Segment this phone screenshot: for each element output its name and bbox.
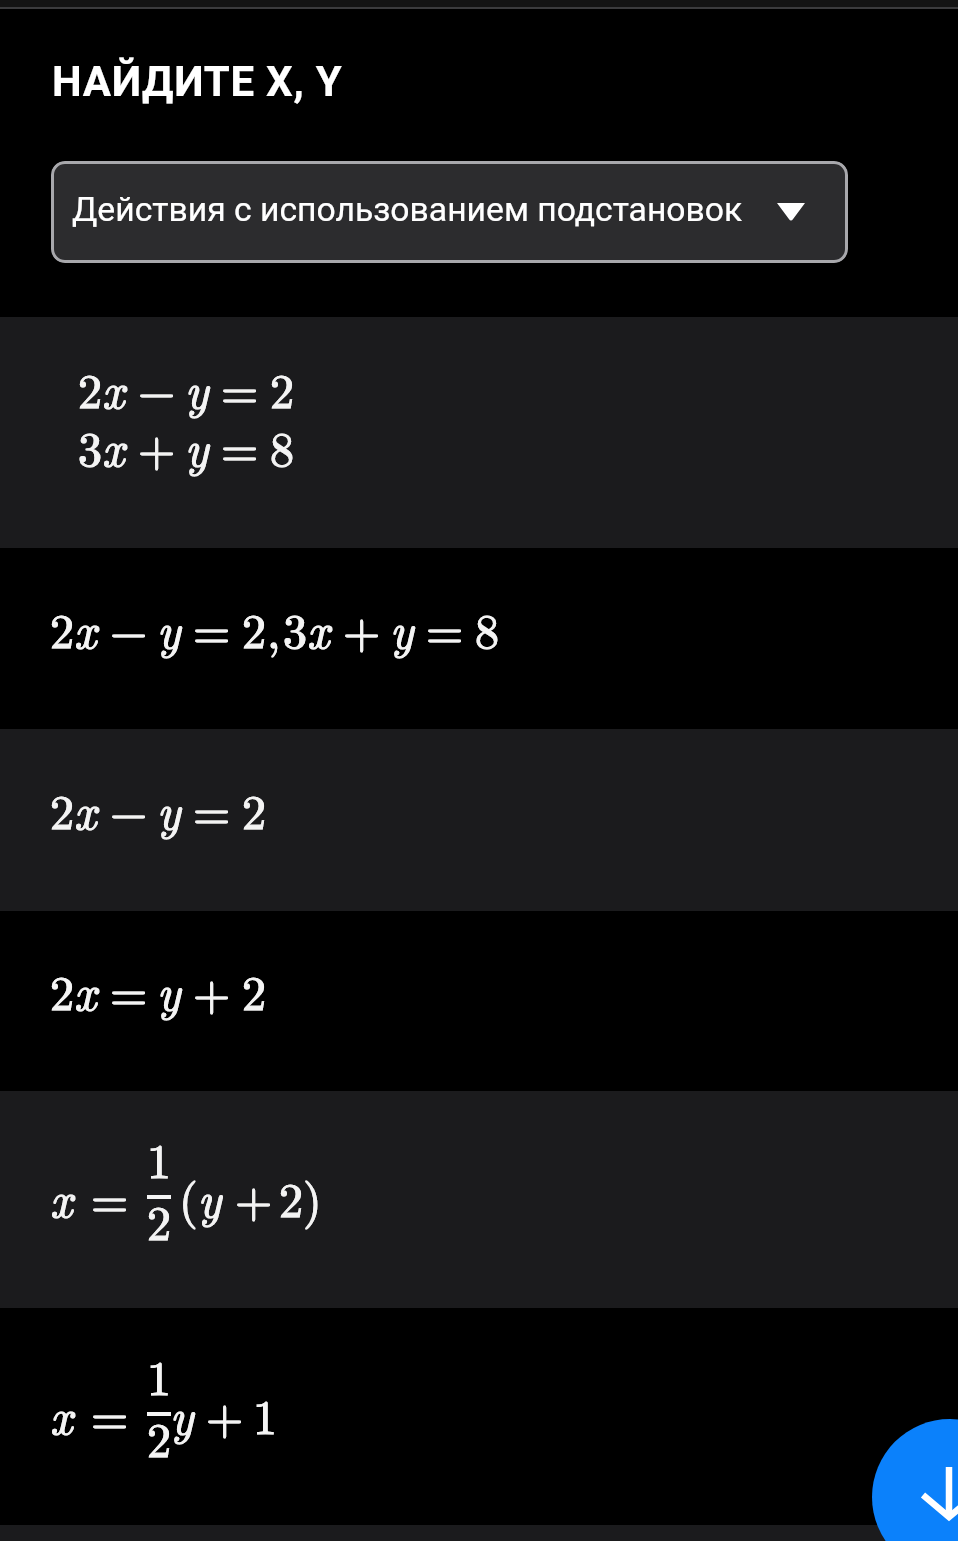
staticText: =: [221, 354, 259, 422]
staticText: 3x: [283, 594, 330, 662]
staticText: 1: [253, 1380, 278, 1448]
staticText: +: [206, 1380, 244, 1448]
staticText: y: [157, 956, 181, 1024]
staticText: x: [50, 1163, 73, 1231]
staticText: 8: [270, 412, 295, 480]
staticText: y: [185, 354, 209, 422]
staticText: 1: [147, 1124, 172, 1192]
staticText: =: [91, 1380, 129, 1448]
staticText: y: [157, 594, 181, 662]
staticText: −: [110, 775, 148, 843]
staticText: 2x: [78, 354, 125, 422]
staticText: y: [157, 956, 181, 1024]
staticText: +: [138, 412, 176, 480]
staticText: 2x: [50, 594, 97, 662]
staticText: 2: [242, 956, 267, 1024]
button[interactable]: x: [0, 1091, 958, 1308]
staticText: 2x: [50, 775, 97, 843]
staticText: =: [221, 354, 259, 422]
staticText: ,: [267, 594, 281, 662]
staticText: 2: [147, 1186, 172, 1254]
staticText: 2: [242, 956, 267, 1024]
staticText: =: [426, 594, 464, 662]
button[interactable]: 2x: [0, 729, 958, 911]
staticText: (y: [179, 1163, 222, 1231]
button[interactable]: x: [0, 1308, 958, 1525]
staticText: y: [185, 354, 209, 422]
staticText: y: [170, 1380, 194, 1448]
staticText: =: [221, 412, 259, 480]
staticText: y: [157, 594, 181, 662]
staticText: 1: [253, 1380, 278, 1448]
staticText: 2: [270, 354, 295, 422]
staticText: Действия с использованием подстановок: [72, 190, 743, 229]
staticText: 2): [279, 1163, 322, 1231]
staticText: y: [170, 1380, 194, 1448]
staticText: y: [185, 412, 209, 480]
staticText: =: [110, 956, 148, 1024]
staticText: x: [50, 1163, 73, 1231]
staticText: y: [390, 594, 414, 662]
staticText: −: [110, 594, 148, 662]
staticText: =: [91, 1163, 129, 1231]
staticText: 8: [475, 594, 500, 662]
staticText: =: [193, 775, 231, 843]
staticText: +: [235, 1163, 273, 1231]
staticText: =: [91, 1163, 129, 1231]
staticText: +: [343, 594, 381, 662]
staticText: =: [110, 956, 148, 1024]
button[interactable]: Scroll to bottom: [872, 1419, 958, 1541]
staticText: x: [50, 1380, 73, 1448]
staticText: 2: [242, 775, 267, 843]
staticText: 2: [147, 1403, 172, 1471]
staticText: 2: [242, 594, 267, 662]
staticText: 2x: [50, 956, 97, 1024]
staticText: 3x: [78, 412, 125, 480]
staticText: 8: [475, 594, 500, 662]
staticText: 2: [147, 1403, 172, 1471]
button[interactable]: 2x: [0, 317, 958, 548]
button[interactable]: Действия с использованием подстановок: [51, 161, 848, 263]
button[interactable]: 2x: [0, 548, 958, 729]
staticText: +: [343, 594, 381, 662]
staticText: −: [138, 354, 176, 422]
staticText: НАЙДИТЕ X, Y: [52, 57, 343, 106]
staticText: 1: [147, 1341, 172, 1409]
staticText: =: [426, 594, 464, 662]
staticText: 2: [270, 354, 295, 422]
staticText: x: [50, 1380, 73, 1448]
staticText: =: [193, 594, 231, 662]
staticText: 1: [147, 1124, 172, 1192]
staticText: ,: [267, 594, 281, 662]
staticText: 1: [147, 1341, 172, 1409]
staticText: +: [138, 412, 176, 480]
staticText: 3x: [283, 594, 330, 662]
button[interactable]: 2x: [0, 911, 958, 1091]
staticText: y: [157, 775, 181, 843]
staticText: +: [235, 1163, 273, 1231]
staticText: 2x: [50, 594, 97, 662]
staticText: 2): [279, 1163, 322, 1231]
staticText: =: [193, 594, 231, 662]
staticText: 2: [242, 775, 267, 843]
staticText: −: [110, 775, 148, 843]
staticText: =: [221, 412, 259, 480]
staticText: =: [91, 1380, 129, 1448]
staticText: 8: [270, 412, 295, 480]
staticText: +: [193, 956, 231, 1024]
staticText: 2x: [50, 956, 97, 1024]
staticText: −: [110, 594, 148, 662]
staticText: =: [193, 775, 231, 843]
staticText: y: [390, 594, 414, 662]
staticText: 2x: [50, 775, 97, 843]
staticText: −: [138, 354, 176, 422]
staticText: +: [193, 956, 231, 1024]
staticText: y: [157, 775, 181, 843]
staticText: (y: [179, 1163, 222, 1231]
staticText: 3x: [78, 412, 125, 480]
staticText: y: [185, 412, 209, 480]
staticText: +: [206, 1380, 244, 1448]
staticText: 2: [147, 1186, 172, 1254]
staticText: 2x: [78, 354, 125, 422]
staticText: 2: [242, 594, 267, 662]
